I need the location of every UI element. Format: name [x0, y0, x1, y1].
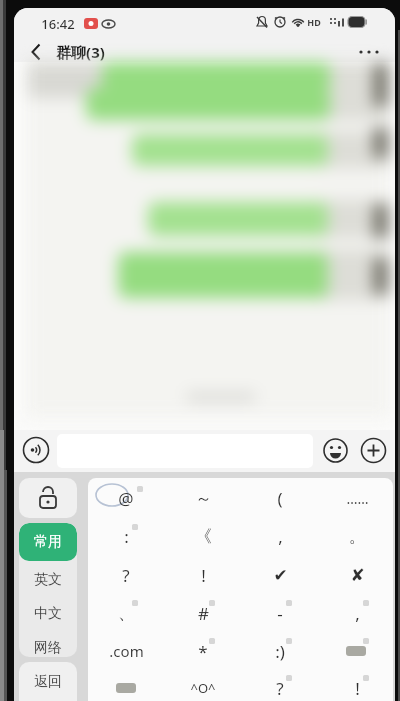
button[interactable] — [322, 437, 349, 464]
button[interactable]: ! — [168, 559, 238, 591]
staticText: ^O^ — [190, 679, 216, 697]
staticText: 常用 — [34, 533, 62, 551]
button[interactable]: ^O^ — [168, 672, 238, 701]
staticText: ～ — [195, 488, 212, 509]
button[interactable]: @ — [91, 482, 161, 514]
staticText: , — [355, 602, 360, 625]
button[interactable]: :) — [245, 635, 315, 667]
button[interactable] — [26, 39, 46, 65]
staticText: # — [198, 602, 209, 625]
button[interactable]: …… — [322, 482, 392, 514]
button[interactable]: ✔ — [245, 559, 315, 591]
button[interactable]: 网络 — [19, 635, 77, 657]
staticText: 网络 — [34, 639, 62, 657]
button[interactable]: - — [245, 597, 315, 629]
staticText: 《 — [195, 526, 212, 547]
staticText: 、 — [118, 603, 135, 624]
button[interactable] — [19, 478, 77, 518]
staticText: HD — [307, 16, 321, 28]
button[interactable]: ? — [245, 672, 315, 701]
staticText: ( — [277, 487, 283, 510]
button[interactable]: ～ — [168, 482, 238, 514]
button[interactable]: ✘ — [322, 559, 392, 591]
button[interactable]: ! — [322, 672, 392, 701]
staticText: , — [278, 525, 283, 548]
button[interactable]: 常用 — [19, 523, 77, 561]
staticText: 。 — [349, 526, 366, 547]
button[interactable]: 、 — [91, 597, 161, 629]
button[interactable]: 英文 — [19, 567, 77, 593]
button[interactable]: * — [168, 635, 238, 667]
staticText: :) — [275, 640, 285, 663]
button[interactable]: 返回 — [19, 662, 77, 701]
staticText: ✘ — [350, 565, 365, 585]
staticText: ! — [201, 564, 206, 587]
button[interactable]: , — [322, 597, 392, 629]
staticText: 中文 — [34, 605, 62, 623]
button[interactable]: # — [168, 597, 238, 629]
button[interactable] — [355, 39, 383, 65]
button[interactable]: ( — [245, 482, 315, 514]
staticText: …… — [346, 489, 369, 508]
staticText: : — [124, 525, 129, 548]
button[interactable]: .com — [91, 635, 161, 667]
staticText: ? — [122, 564, 130, 587]
staticText: @ — [118, 487, 134, 510]
staticText: .com — [109, 641, 144, 661]
button[interactable]: 《 — [168, 520, 238, 552]
staticText: ? — [276, 677, 284, 700]
button[interactable]: , — [245, 520, 315, 552]
staticText: * — [198, 640, 208, 663]
staticText: 返回 — [34, 673, 62, 691]
button[interactable] — [360, 437, 387, 464]
staticText: ! — [355, 677, 360, 700]
staticText: 16:42 — [41, 15, 75, 33]
button[interactable]: ? — [91, 559, 161, 591]
button[interactable]: 。 — [322, 520, 392, 552]
staticText: 英文 — [34, 571, 62, 589]
staticText: - — [277, 602, 283, 625]
button[interactable] — [20, 434, 54, 468]
staticText: 群聊(3) — [56, 42, 105, 62]
button[interactable]: 中文 — [19, 601, 77, 627]
staticText: ✔ — [273, 565, 288, 585]
button[interactable]: : — [91, 520, 161, 552]
